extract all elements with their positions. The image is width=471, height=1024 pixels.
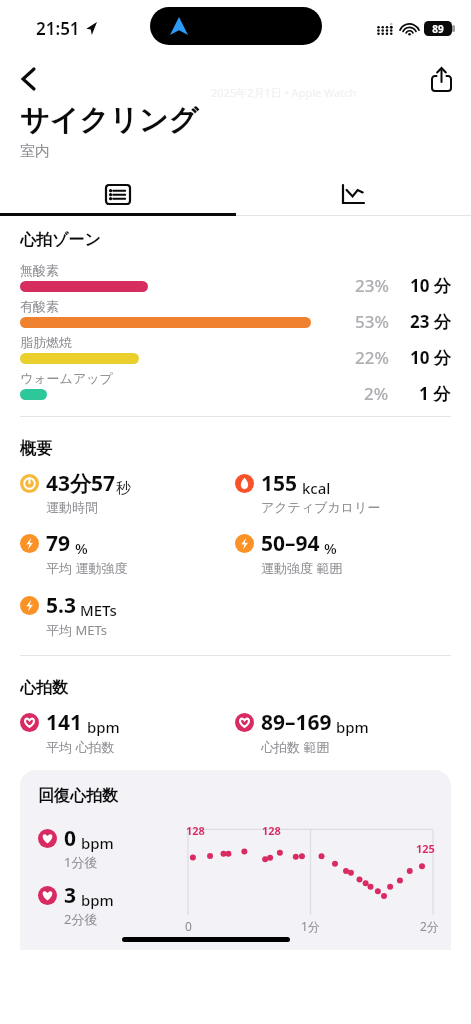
- staticText: bpm: [77, 890, 114, 910]
- staticText: 2分後: [64, 910, 98, 928]
- staticText: bpm: [332, 717, 369, 737]
- staticText: 10 分: [410, 274, 451, 297]
- staticText: 有酸素: [20, 298, 59, 314]
- staticText: %: [71, 538, 88, 558]
- staticText: 平均 METs: [46, 621, 108, 639]
- staticText: 23 分: [410, 310, 451, 333]
- staticText: 79: [46, 529, 71, 558]
- staticText: METs: [76, 600, 117, 620]
- staticText: 10 分: [410, 346, 451, 369]
- staticText: 0: [185, 918, 192, 934]
- button[interactable]: Details: [0, 175, 235, 213]
- staticText: %: [320, 538, 337, 558]
- staticText: 1分後: [64, 853, 98, 871]
- staticText: 心拍ゾーン: [20, 230, 101, 250]
- staticText: サイクリング: [20, 102, 199, 139]
- button[interactable]: 79: [20, 529, 128, 577]
- staticText: 125: [416, 841, 435, 856]
- staticText: 22%: [355, 346, 389, 369]
- staticText: 心拍数: [20, 678, 68, 698]
- staticText: 2分: [420, 918, 439, 934]
- staticText: 秒: [116, 479, 131, 498]
- staticText: 心拍数 範囲: [261, 738, 330, 756]
- staticText: 53%: [355, 310, 389, 333]
- staticText: 室内: [20, 142, 50, 161]
- button[interactable]: 43分57: [20, 469, 131, 515]
- button[interactable]: Charts: [235, 175, 471, 213]
- button[interactable]: Share: [419, 57, 463, 101]
- staticText: 概要: [20, 439, 52, 459]
- staticText: 回復心拍数: [38, 786, 118, 806]
- staticText: アクティブカロリー: [261, 499, 381, 515]
- button[interactable]: 155: [235, 469, 381, 515]
- button[interactable]: 141: [20, 708, 120, 756]
- staticText: 141: [46, 708, 83, 737]
- button[interactable]: 89–169: [235, 708, 369, 756]
- staticText: 21:51: [36, 17, 80, 40]
- staticText: bpm: [83, 717, 120, 737]
- button[interactable]: 5.3: [20, 591, 117, 639]
- staticText: 89–169: [261, 708, 332, 737]
- button[interactable]: 50–94: [235, 529, 343, 577]
- staticText: bpm: [77, 833, 114, 853]
- staticText: ウォームアップ: [20, 370, 113, 386]
- staticText: 128: [186, 823, 205, 838]
- staticText: 0: [64, 824, 77, 853]
- staticText: 2%: [364, 382, 389, 405]
- staticText: 43分57: [46, 469, 116, 498]
- staticText: 128: [262, 823, 281, 838]
- staticText: 1分: [301, 918, 320, 934]
- staticText: 23%: [355, 274, 389, 297]
- staticText: 3: [64, 881, 77, 910]
- staticText: kcal: [298, 478, 331, 498]
- staticText: 運動時間: [46, 499, 98, 515]
- staticText: 2025年2月1日 • Apple Watch: [211, 85, 357, 100]
- staticText: 155: [261, 469, 298, 498]
- button[interactable]: 回復心拍数: [20, 770, 451, 950]
- staticText: 50–94: [261, 529, 320, 558]
- staticText: 平均 運動強度: [46, 559, 128, 577]
- button[interactable]: Back: [6, 57, 50, 101]
- staticText: 5.3: [46, 591, 76, 620]
- staticText: 平均 心拍数: [46, 738, 115, 756]
- staticText: 運動強度 範囲: [261, 559, 343, 577]
- staticText: 1 分: [419, 382, 451, 405]
- staticText: 無酸素: [20, 262, 59, 278]
- staticText: 89: [432, 22, 444, 36]
- staticText: 脂肪燃焼: [20, 334, 72, 350]
